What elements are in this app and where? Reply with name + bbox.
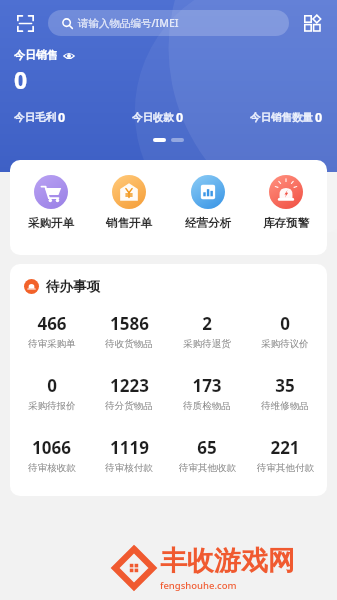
staticText: 221 (270, 436, 300, 459)
staticText: 待审核付款 (105, 462, 153, 474)
staticText: 1586 (110, 312, 149, 335)
staticText: 1223 (110, 374, 149, 397)
staticText: 采购待议价 (261, 338, 309, 350)
button[interactable]: 1223 (90, 374, 168, 412)
staticText: 待收货物品 (105, 338, 153, 350)
button[interactable]: 采购开单 (14, 175, 88, 230)
button[interactable]: 经营分析 (171, 175, 245, 230)
staticText: 待审核收款 (28, 462, 76, 474)
staticText: 采购待退货 (183, 338, 231, 350)
button[interactable]: 466 (13, 312, 90, 350)
staticText: 65 (197, 436, 217, 459)
staticText: 采购待报价 (28, 400, 76, 412)
staticText: 0 (176, 109, 184, 126)
staticText: 待审采购单 (28, 338, 76, 350)
button[interactable]: 1066 (13, 436, 90, 474)
staticText: 0 (58, 109, 66, 126)
staticText: 今日销售 (14, 48, 58, 62)
staticText: 1119 (110, 436, 149, 459)
staticText: 待审其他付款 (257, 462, 314, 474)
staticText: 35 (275, 374, 295, 397)
staticText: 今日毛利 (14, 111, 56, 124)
staticText: 1066 (32, 436, 71, 459)
staticText: 0 (315, 109, 323, 126)
button[interactable]: 1586 (90, 312, 168, 350)
staticText: 今日收款 (132, 111, 174, 124)
button[interactable]: 0 (13, 374, 90, 412)
staticText: 466 (37, 312, 67, 335)
staticText: 库存预警 (263, 216, 309, 230)
button[interactable]: 请输入物品编号/IMEI (48, 10, 289, 36)
staticText: 今日销售数量 (250, 111, 313, 124)
staticText: 173 (192, 374, 222, 397)
button[interactable]: 35 (246, 374, 324, 412)
staticText: 采购开单 (28, 216, 74, 230)
button[interactable]: 173 (168, 374, 246, 412)
button[interactable]: 今日销售数量 (250, 109, 323, 126)
staticText: 待办事项 (46, 278, 100, 295)
staticText: 请输入物品编号/IMEI (78, 16, 179, 30)
staticText: 2 (202, 312, 212, 335)
staticText: 0 (280, 312, 290, 335)
staticText: 0 (14, 64, 28, 95)
button[interactable]: 221 (246, 436, 324, 474)
button[interactable]: 0 (246, 312, 324, 350)
staticText: 销售开单 (106, 216, 152, 230)
staticText: 0 (47, 374, 57, 397)
staticText: 待维修物品 (261, 400, 309, 412)
button[interactable]: 今日毛利 (14, 109, 66, 126)
button[interactable]: Toggle amount visibility (62, 49, 75, 62)
button[interactable]: 1119 (90, 436, 168, 474)
staticText: 待审其他收款 (179, 462, 236, 474)
button[interactable]: Scan barcode (12, 10, 38, 36)
button[interactable]: 2 (168, 312, 246, 350)
staticText: 待分货物品 (105, 400, 153, 412)
staticText: 待质检物品 (183, 400, 231, 412)
button[interactable]: 销售开单 (92, 175, 166, 230)
button[interactable]: 65 (168, 436, 246, 474)
button[interactable]: All apps (299, 10, 325, 36)
button[interactable]: 库存预警 (249, 175, 323, 230)
staticText: 经营分析 (185, 216, 231, 230)
staticText: fengshouhe.com (160, 579, 237, 592)
staticText: 丰收游戏网 (160, 544, 295, 578)
button[interactable]: 今日收款 (132, 109, 184, 126)
